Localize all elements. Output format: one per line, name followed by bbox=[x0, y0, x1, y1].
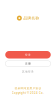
staticText: 登录即同意用户协议 bbox=[14, 87, 41, 90]
staticText: 登录 bbox=[25, 53, 31, 56]
staticText: 品牌名称 bbox=[23, 16, 39, 20]
button[interactable]: 登录即同意用户协议 bbox=[14, 87, 41, 90]
staticText: Copyright © 2024 Co. bbox=[12, 91, 44, 95]
button[interactable]: 登录 bbox=[5, 51, 51, 58]
button[interactable]: 注册 bbox=[5, 61, 51, 66]
staticText: 注册 bbox=[25, 62, 31, 65]
staticText: 其他登录 bbox=[22, 70, 34, 73]
button[interactable]: 其他登录 bbox=[0, 70, 56, 73]
